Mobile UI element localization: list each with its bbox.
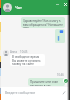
staticText: Чат <box>15 5 22 10</box>
button[interactable]: Minimize <box>54 1 60 7</box>
staticText: Анна <box>10 50 18 54</box>
button[interactable]: Profile <box>3 3 12 12</box>
button[interactable]: Здравствуйте! Как я могу к вам обращатьс… <box>21 17 65 28</box>
staticText: Пришлите мне скан паспорта в чат <box>30 80 65 86</box>
button[interactable]: Пришлите мне скан паспорта в чат <box>28 78 65 86</box>
staticText: 10:46 <box>57 73 64 77</box>
staticText: Введите сообщение <box>5 91 36 95</box>
staticText: В свободное время Вы можете оставить зая… <box>12 55 44 66</box>
button[interactable]: Введите сообщение <box>5 91 36 95</box>
button[interactable]: Close <box>62 1 68 7</box>
other: Delivered <box>64 79 68 83</box>
button[interactable]: Attachment <box>55 29 65 43</box>
staticText: Здравствуйте! Как я могу к вам обращатьс… <box>23 19 63 28</box>
staticText: 10:45 <box>20 50 28 54</box>
button[interactable]: В свободное время Вы можете оставить зая… <box>10 54 45 66</box>
button[interactable]: Attach file <box>60 89 67 96</box>
